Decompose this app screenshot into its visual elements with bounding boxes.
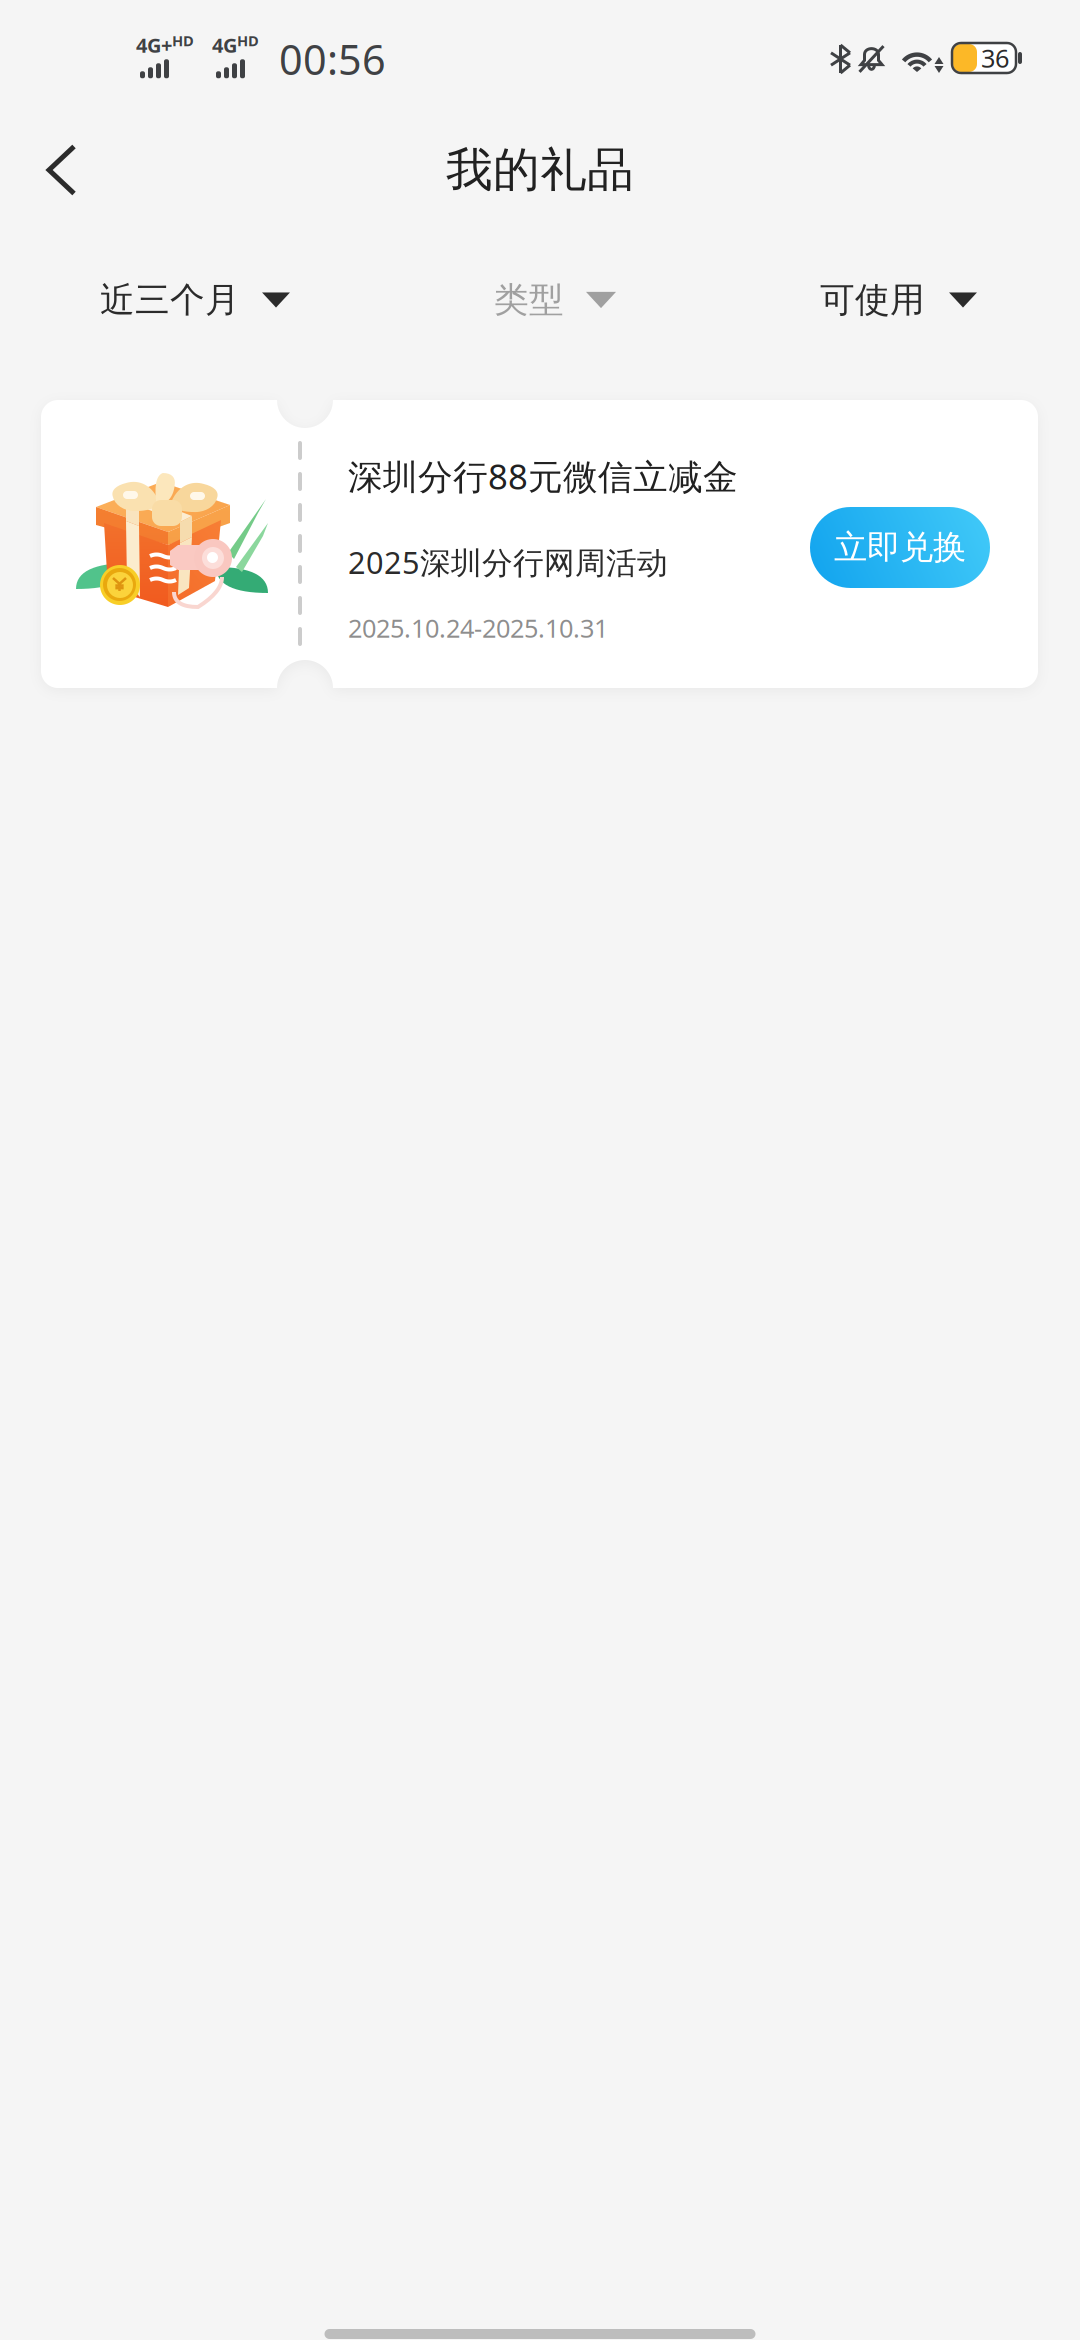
button[interactable]: 立即兑换 — [810, 507, 990, 588]
staticText: 00:56 — [279, 32, 386, 86]
staticText: HD — [237, 31, 259, 50]
staticText: 我的礼品 — [446, 141, 634, 199]
button[interactable]: 近三个月 — [90, 240, 300, 360]
button[interactable]: Back — [0, 114, 118, 225]
staticText: 深圳分行88元微信立减金 — [348, 453, 738, 499]
staticText: 2025.10.24-2025.10.31 — [348, 611, 608, 645]
staticText: HD — [172, 31, 194, 50]
staticText: 类型 — [494, 279, 564, 321]
button[interactable]: 类型 — [484, 240, 626, 360]
staticText: 4G — [212, 32, 237, 58]
staticText: 36 — [981, 41, 1009, 75]
staticText: 立即兑换 — [834, 527, 966, 568]
staticText: 近三个月 — [100, 279, 240, 321]
button[interactable]: 深圳分行88元微信立减金 — [41, 400, 1038, 688]
staticText: 2025深圳分行网周活动 — [348, 542, 668, 582]
staticText: 可使用 — [820, 279, 925, 321]
button[interactable]: 可使用 — [810, 240, 987, 360]
staticText: 4G+ — [136, 32, 172, 58]
